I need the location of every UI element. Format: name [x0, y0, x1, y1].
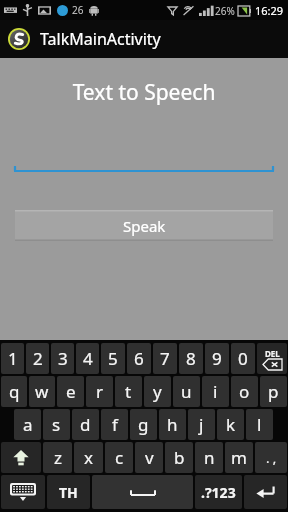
staticText: n — [204, 446, 215, 469]
button[interactable]: TH — [47, 475, 90, 509]
button[interactable]: 3 — [51, 343, 74, 374]
button[interactable]: d — [72, 409, 99, 440]
staticText: .?123 — [201, 483, 236, 502]
button[interactable]: z — [43, 442, 72, 473]
staticText: Text to Speech — [0, 78, 288, 107]
staticText: 5 — [108, 347, 118, 370]
button[interactable]: 0 — [231, 343, 255, 374]
staticText: Speak — [123, 216, 166, 236]
button[interactable]: u — [173, 376, 200, 407]
staticText: 16:29 — [255, 3, 284, 18]
button[interactable]: y — [144, 376, 171, 407]
button[interactable]: q — [1, 376, 27, 407]
staticText: j — [199, 413, 204, 436]
staticText: y — [153, 380, 162, 403]
button[interactable]: .?123 — [195, 475, 242, 509]
staticText: 3 — [58, 347, 68, 370]
staticText: k — [226, 413, 236, 436]
staticText: z — [54, 446, 62, 469]
staticText: w — [35, 380, 49, 403]
button[interactable]: h — [159, 409, 186, 440]
button[interactable]: 7 — [153, 343, 177, 374]
button[interactable]: c — [105, 442, 133, 473]
staticText: x — [84, 446, 93, 469]
staticText: s — [52, 413, 61, 436]
staticText: q — [9, 380, 20, 403]
staticText: 1 — [8, 347, 18, 370]
staticText: v — [145, 446, 154, 469]
button[interactable]: e — [57, 376, 84, 407]
button[interactable]: Speak — [15, 210, 273, 241]
staticText: p — [268, 380, 279, 403]
staticText: 26% — [215, 4, 235, 18]
staticText: 8 — [186, 347, 196, 370]
staticText: e — [66, 380, 76, 403]
button[interactable]: Hide keyboard — [1, 475, 45, 509]
staticText: t — [125, 380, 132, 403]
button[interactable]: Shift — [1, 442, 41, 473]
staticText: c — [115, 446, 124, 469]
button[interactable]: 4 — [76, 343, 99, 374]
button[interactable]: r — [86, 376, 113, 407]
staticText: 6 — [134, 347, 144, 370]
button[interactable]: s — [43, 409, 70, 440]
button[interactable]: t — [115, 376, 142, 407]
button[interactable]: n — [195, 442, 223, 473]
staticText: i — [213, 380, 218, 403]
staticText: h — [167, 413, 178, 436]
staticText: b — [174, 446, 185, 469]
button[interactable]: a — [14, 409, 41, 440]
button[interactable]: l — [246, 409, 273, 440]
staticText: u — [181, 380, 192, 403]
button[interactable]: 1 — [1, 343, 24, 374]
button[interactable]: 8 — [179, 343, 203, 374]
staticText: TH — [59, 483, 78, 502]
button[interactable]: x — [74, 442, 103, 473]
staticText: r — [96, 380, 104, 403]
button[interactable]: . , — [255, 442, 287, 473]
button[interactable]: w — [29, 376, 55, 407]
staticText: g — [138, 413, 149, 436]
staticText: l — [257, 413, 262, 436]
staticText: TalkMainActivity — [40, 28, 161, 50]
staticText: . , — [266, 449, 277, 467]
button[interactable]: o — [231, 376, 258, 407]
staticText: d — [80, 413, 91, 436]
staticText: 2 — [33, 347, 43, 370]
button[interactable]: b — [165, 442, 193, 473]
staticText: m — [231, 446, 247, 469]
button[interactable]: Enter — [244, 475, 287, 509]
staticText: 9 — [212, 347, 222, 370]
button[interactable]: 6 — [127, 343, 151, 374]
staticText: 26 — [72, 3, 84, 17]
button[interactable]: k — [217, 409, 244, 440]
button[interactable]: 2 — [26, 343, 49, 374]
button[interactable]: 9 — [205, 343, 229, 374]
button[interactable]: i — [202, 376, 229, 407]
staticText: 4 — [83, 347, 93, 370]
button[interactable]: j — [188, 409, 215, 440]
button[interactable]: m — [225, 442, 253, 473]
button[interactable]: g — [130, 409, 157, 440]
button[interactable]: Delete — [257, 343, 287, 374]
staticText: DEL — [265, 348, 280, 359]
button[interactable]: v — [135, 442, 163, 473]
button[interactable]: f — [101, 409, 128, 440]
staticText: f — [112, 413, 118, 436]
button[interactable]: Space — [92, 475, 193, 509]
button[interactable]: p — [260, 376, 287, 407]
button[interactable]: 5 — [101, 343, 125, 374]
staticText: 0 — [238, 347, 248, 370]
staticText: 7 — [160, 347, 170, 370]
button[interactable]: Text input — [14, 155, 274, 173]
staticText: a — [23, 413, 33, 436]
staticText: o — [239, 380, 250, 403]
